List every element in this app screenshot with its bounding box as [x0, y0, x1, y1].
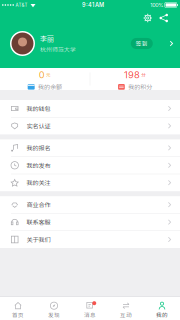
staticText: 关于我们 — [26, 235, 50, 244]
staticText: 签到 — [136, 39, 148, 48]
button[interactable]: Settings — [143, 14, 152, 22]
staticText: 我的钱包 — [26, 104, 50, 113]
button[interactable]: 关于我们 — [0, 231, 180, 248]
staticText: 我的 — [156, 311, 168, 319]
staticText: 分 — [141, 71, 146, 78]
button[interactable]: 0 — [0, 67, 90, 91]
button[interactable]: 我的报名 — [0, 139, 180, 156]
staticText: 首页 — [12, 311, 24, 319]
staticText: 实名认证 — [26, 121, 50, 130]
staticText: 我的发布 — [26, 161, 50, 170]
button[interactable]: Share — [159, 14, 168, 22]
staticText: 0 — [39, 69, 45, 80]
button[interactable]: 首页 — [0, 302, 36, 319]
staticText: 我的积分 — [128, 82, 152, 91]
button[interactable]: 李丽 — [0, 31, 180, 56]
button[interactable]: 我的关注 — [0, 174, 180, 191]
staticText: 李丽 — [40, 33, 54, 43]
staticText: 我的报名 — [26, 143, 50, 152]
button[interactable]: 我的 — [144, 302, 180, 319]
button[interactable]: 198 — [90, 67, 180, 91]
staticText: 互动 — [120, 311, 132, 319]
button[interactable]: 发现 — [36, 302, 72, 319]
staticText: AT&T — [15, 2, 27, 8]
button[interactable]: 消息 — [72, 302, 108, 319]
button[interactable]: 我的发布 — [0, 157, 180, 174]
staticText: 9:41 AM — [82, 2, 104, 8]
staticText: 联系客服 — [26, 218, 50, 227]
button[interactable]: 我的钱包 — [0, 100, 180, 117]
staticText: 发现 — [48, 311, 60, 319]
staticText: 198 — [124, 69, 140, 80]
staticText: 商业合作 — [26, 200, 50, 209]
staticText: 我的关注 — [26, 178, 50, 187]
button[interactable]: 商业合作 — [0, 196, 180, 213]
button[interactable]: 联系客服 — [0, 214, 180, 231]
button[interactable]: 实名认证 — [0, 117, 180, 134]
staticText: 我的余额 — [38, 82, 62, 91]
staticText: 100% — [150, 2, 163, 8]
staticText: 杭州师范大学 — [40, 45, 76, 54]
staticText: 消息 — [84, 311, 96, 319]
staticText: 元 — [46, 71, 51, 78]
button[interactable]: 互动 — [108, 302, 144, 319]
